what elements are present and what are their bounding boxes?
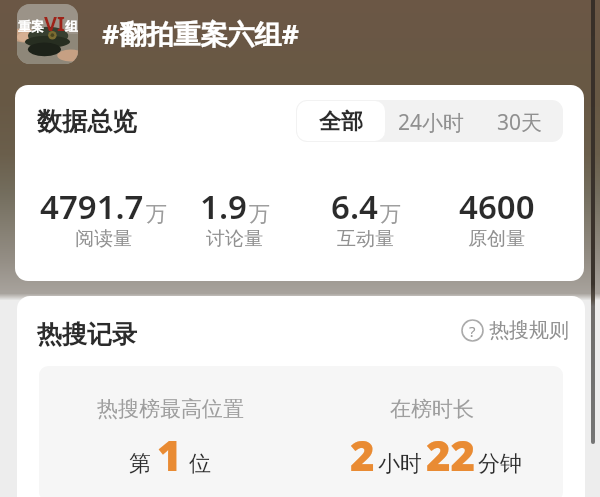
staticText: 30天	[497, 108, 543, 137]
staticText: 组	[65, 18, 78, 34]
button[interactable]: ?	[461, 318, 569, 343]
button[interactable]: #翻拍重案六组#	[102, 15, 299, 52]
staticText: #翻拍重案六组#	[102, 15, 299, 52]
staticText: 万	[146, 201, 167, 227]
staticText: 4791.7	[40, 184, 144, 229]
staticText: 讨论量	[206, 227, 263, 251]
staticText: 位	[189, 450, 211, 478]
staticText: 24小时	[398, 108, 465, 137]
staticText: 1	[157, 426, 182, 483]
staticText: ?	[469, 321, 476, 341]
staticText: 热搜记录	[37, 319, 137, 350]
staticText: 数据总览	[37, 106, 137, 137]
staticText: 全部	[319, 108, 363, 136]
button[interactable]: 全部	[297, 101, 385, 141]
staticText: 4600	[459, 184, 535, 229]
staticText: 1.9	[200, 184, 247, 229]
staticText: 6.4	[331, 184, 378, 229]
staticText: 重案	[18, 18, 44, 34]
staticText: 热搜规则	[489, 318, 569, 343]
staticText: 万	[249, 201, 270, 227]
staticText: 小时	[378, 450, 422, 478]
staticText: 22	[426, 426, 476, 483]
button[interactable]: 30天	[477, 100, 563, 142]
staticText: 分钟	[478, 450, 522, 478]
staticText: 阅读量	[75, 227, 132, 251]
staticText: 互动量	[337, 227, 394, 251]
staticText: VI	[44, 10, 65, 37]
staticText: 万	[380, 201, 401, 227]
staticText: 第	[129, 450, 151, 478]
staticText: 原创量	[468, 227, 525, 251]
staticText: 2	[350, 426, 375, 483]
button[interactable]: 24小时	[386, 100, 477, 142]
staticText: 热搜榜最高位置	[97, 396, 244, 422]
button[interactable]: Topic avatar	[17, 4, 78, 64]
staticText: 在榜时长	[390, 396, 474, 422]
